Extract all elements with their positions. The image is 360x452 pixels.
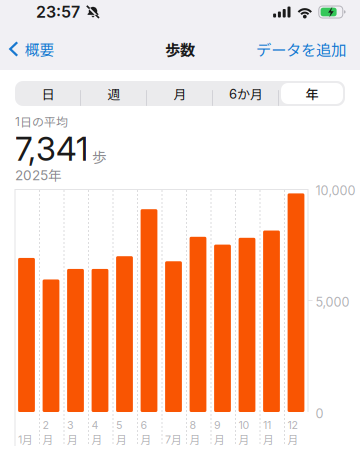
staticText: 1月 [18,432,33,447]
staticText: 3 [67,419,74,431]
staticText: 月 [91,432,102,447]
staticText: 7,341 [15,129,88,168]
staticText: 月 [140,432,151,447]
staticText: 月 [263,432,274,447]
staticText: 歩数 [165,38,195,60]
button[interactable]: 年 [279,81,345,106]
staticText: 月 [287,432,298,447]
staticText: 5,000 [315,294,349,310]
staticText: 月 [173,84,186,103]
staticText: 週 [107,84,120,103]
staticText: データを追加 [256,38,346,60]
staticText: 2 [42,419,49,431]
staticText: 9 [214,419,221,431]
button[interactable]: 概要 [0,34,62,64]
button[interactable]: 週 [81,81,147,106]
staticText: 23:57 [36,2,80,22]
staticText: 月 [214,432,225,447]
staticText: 4 [91,419,98,431]
staticText: 月 [116,432,127,447]
button[interactable]: 日 [15,81,81,106]
button[interactable]: 月 [147,81,213,106]
staticText: 0 [315,406,323,421]
button[interactable]: データを追加 [248,34,360,64]
staticText: 5 [116,419,122,431]
staticText: 月 [238,432,249,447]
staticText: 6か月 [229,84,263,103]
staticText: 1日の平均 [15,112,68,130]
staticText: 10,000 [315,183,355,198]
staticText: 10 [238,419,249,431]
staticText: 8 [189,419,196,431]
staticText: 歩 [92,146,107,167]
staticText: 月 [67,432,78,447]
staticText: 7月 [165,432,182,447]
staticText: 6 [140,419,147,431]
staticText: 12 [287,419,298,431]
staticText: 日 [41,84,54,103]
staticText: 11 [263,419,271,431]
staticText: 年 [305,84,318,103]
button[interactable]: 6か月 [213,81,279,106]
staticText: 月 [42,432,53,447]
staticText: 概要 [24,38,54,60]
staticText: 2025年 [15,165,62,185]
staticText: 月 [189,432,200,447]
